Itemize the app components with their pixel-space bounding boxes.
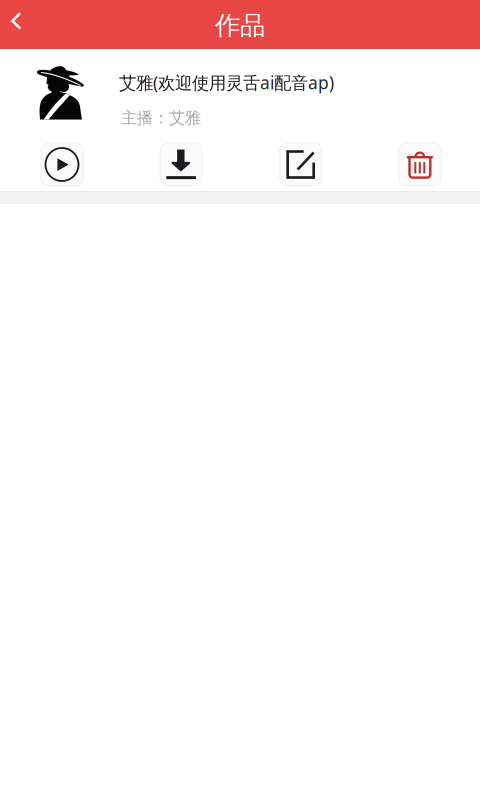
button[interactable]: Delete [399,143,441,186]
staticText: 作品 [215,10,265,41]
button[interactable]: Download [160,143,202,186]
staticText: 主播：艾雅 [121,108,201,128]
button[interactable]: Back [0,0,44,44]
button[interactable]: Edit [280,143,322,186]
button[interactable]: Play [41,143,83,186]
staticText: 艾雅(欢迎使用灵舌ai配音ap) [119,71,334,94]
